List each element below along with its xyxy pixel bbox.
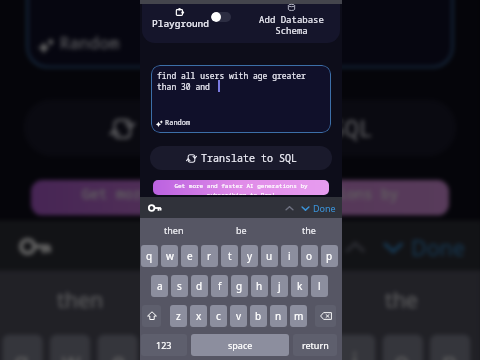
staticText: r — [207, 249, 212, 263]
button[interactable]: p — [430, 334, 470, 360]
button[interactable]: Previous field — [281, 200, 297, 216]
button[interactable]: q — [2, 334, 43, 360]
button[interactable]: r — [145, 334, 185, 360]
staticText: space — [228, 339, 253, 351]
staticText: Add Database Schema — [259, 13, 324, 37]
staticText: t — [209, 344, 219, 360]
button[interactable]: be — [208, 218, 275, 241]
button[interactable]: Random — [38, 33, 121, 56]
button[interactable]: f — [211, 275, 228, 297]
staticText: i — [288, 249, 291, 263]
button[interactable]: find all users with age greater than 30 … — [26, 0, 454, 68]
staticText: d — [196, 279, 203, 293]
button[interactable]: Playground toggle — [211, 12, 231, 22]
button[interactable]: Get more and faster AI generations by su… — [31, 180, 449, 216]
button[interactable]: Translate to SQL — [24, 99, 456, 156]
button[interactable]: space — [191, 334, 289, 356]
button[interactable]: then — [0, 270, 162, 325]
button[interactable]: be — [162, 270, 321, 325]
button[interactable]: x — [190, 305, 207, 327]
button[interactable]: t — [192, 334, 233, 360]
staticText: g — [236, 279, 243, 293]
staticText: z — [176, 309, 181, 323]
staticText: Get more and faster AI generations by su… — [81, 185, 399, 216]
button[interactable]: Backspace — [315, 305, 336, 327]
staticText: w — [62, 344, 81, 360]
staticText: the — [302, 224, 316, 236]
staticText: o — [306, 249, 313, 263]
button[interactable]: j — [271, 275, 288, 297]
button[interactable]: u — [287, 334, 328, 360]
button[interactable]: i — [281, 245, 298, 267]
button[interactable]: c — [210, 305, 227, 327]
staticText: m — [294, 309, 304, 323]
button[interactable]: v — [230, 305, 247, 327]
staticText: then — [164, 224, 184, 236]
button[interactable]: 123 — [141, 334, 187, 356]
staticText: s — [177, 279, 182, 293]
button[interactable]: find all users with age greater than 30 … — [151, 65, 331, 133]
staticText: Random — [59, 33, 121, 56]
button[interactable]: then — [140, 218, 208, 241]
staticText: be — [228, 284, 254, 313]
button[interactable]: n — [270, 305, 287, 327]
button[interactable]: b — [250, 305, 267, 327]
button[interactable]: s — [171, 275, 188, 297]
staticText: n — [275, 309, 282, 323]
button[interactable]: u — [261, 245, 278, 267]
button[interactable]: d — [191, 275, 208, 297]
button[interactable]: w — [161, 245, 178, 267]
button[interactable]: Passwords — [146, 199, 164, 217]
button[interactable]: the — [275, 218, 342, 241]
button[interactable]: Previous field — [335, 227, 373, 265]
staticText: q — [146, 249, 153, 263]
button[interactable]: w — [50, 334, 90, 360]
staticText: f — [218, 279, 222, 293]
button[interactable]: Next field — [297, 200, 313, 216]
button[interactable]: p — [321, 245, 338, 267]
button[interactable]: e — [97, 334, 138, 360]
button[interactable]: Random — [156, 118, 191, 128]
staticText: u — [266, 249, 273, 263]
staticText: Translate to SQL — [145, 111, 373, 144]
button[interactable]: Shift — [142, 305, 161, 327]
button[interactable]: Next field — [373, 227, 411, 265]
staticText: be — [236, 224, 247, 236]
staticText: Done — [411, 232, 466, 261]
button[interactable]: Done — [313, 202, 336, 214]
button[interactable]: Translate to SQL — [150, 146, 332, 170]
button[interactable]: return — [293, 334, 337, 356]
button[interactable]: a — [151, 275, 168, 297]
button[interactable]: z — [170, 305, 187, 327]
button[interactable]: o — [382, 334, 423, 360]
staticText: then — [57, 284, 104, 313]
staticText: w — [166, 249, 174, 263]
button[interactable]: h — [251, 275, 268, 297]
button[interactable]: Playground — [146, 6, 212, 30]
staticText: e — [187, 249, 193, 263]
button[interactable]: e — [181, 245, 198, 267]
staticText: t — [228, 249, 232, 263]
button[interactable]: Add Database Schema — [244, 3, 338, 37]
button[interactable]: k — [291, 275, 308, 297]
button[interactable]: Done — [411, 232, 466, 261]
staticText: e — [112, 344, 126, 360]
button[interactable]: q — [141, 245, 158, 267]
button[interactable]: y — [240, 334, 280, 360]
button[interactable]: m — [290, 305, 307, 327]
button[interactable]: l — [311, 275, 328, 297]
button[interactable]: o — [301, 245, 318, 267]
staticText: k — [297, 279, 303, 293]
staticText: the — [385, 284, 418, 313]
button[interactable]: t — [221, 245, 238, 267]
button[interactable]: Get more and faster AI generations by su… — [153, 180, 329, 195]
staticText: y — [247, 249, 253, 263]
button[interactable]: g — [231, 275, 248, 297]
button[interactable]: the — [321, 270, 480, 325]
button[interactable]: r — [201, 245, 218, 267]
button[interactable]: y — [241, 245, 258, 267]
button[interactable]: Passwords — [14, 225, 57, 268]
staticText: y — [254, 344, 268, 360]
staticText: l — [318, 279, 321, 293]
button[interactable]: i — [335, 334, 375, 360]
